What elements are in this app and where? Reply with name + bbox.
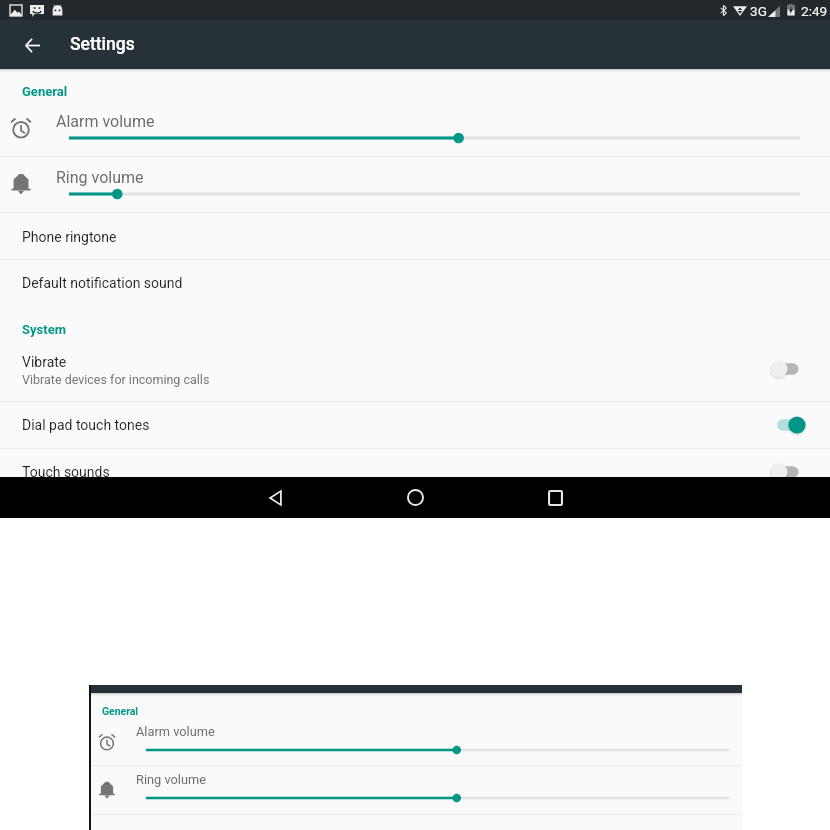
button[interactable]: Back [245, 477, 305, 518]
button[interactable]: Recent apps [525, 477, 585, 518]
staticText: Ring volume [56, 168, 144, 187]
button[interactable] [0, 100, 830, 156]
staticText: 3G [750, 3, 767, 19]
staticText: Phone ringtone [22, 229, 117, 245]
staticText: Settings [70, 34, 135, 55]
button[interactable]: Dial pad touch tones [762, 408, 816, 442]
staticText: Ring volume [136, 772, 207, 787]
staticText: Vibrate [22, 354, 67, 370]
button[interactable] [0, 156, 830, 212]
button[interactable]: Touch sounds [762, 455, 816, 489]
button[interactable]: Vibrate [762, 352, 816, 386]
button[interactable]: Navigate up [14, 27, 50, 63]
staticText: General [22, 84, 68, 99]
staticText: Alarm volume [56, 112, 155, 131]
staticText: System [22, 322, 66, 337]
staticText: Vibrate devices for incoming calls [22, 372, 210, 387]
staticText: General [102, 705, 139, 717]
button[interactable]: Home [385, 477, 445, 518]
staticText: Default notification sound [22, 275, 183, 291]
staticText: Dial pad touch tones [22, 417, 150, 433]
staticText: 2:49 [801, 3, 828, 19]
staticText: Touch sounds [22, 464, 110, 480]
staticText: Alarm volume [136, 724, 215, 739]
